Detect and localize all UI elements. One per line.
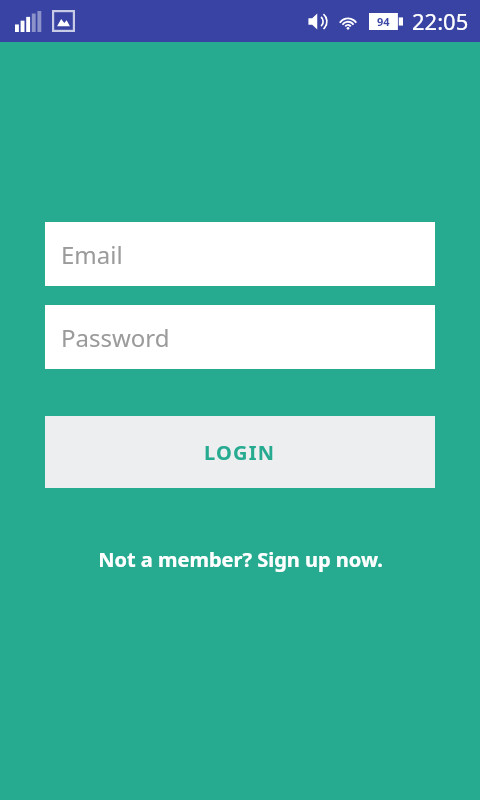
staticText: 22:05 (412, 6, 469, 36)
other: Screenshot (52, 10, 75, 32)
button[interactable]: Email (45, 222, 435, 286)
button[interactable]: Password (45, 305, 435, 369)
staticText: LOGIN (204, 439, 276, 466)
other: Cellular signal (15, 11, 43, 32)
staticText: 94 (377, 14, 390, 29)
other: Battery 94 percent (369, 13, 403, 30)
staticText: Password (61, 321, 170, 354)
button[interactable]: Not a member? Sign up now. (0, 546, 480, 573)
staticText: Email (61, 238, 123, 271)
button[interactable]: LOGIN (45, 416, 435, 488)
other: Wi-Fi (337, 12, 359, 31)
staticText: Not a member? Sign up now. (98, 546, 383, 573)
other: Volume (308, 12, 329, 31)
